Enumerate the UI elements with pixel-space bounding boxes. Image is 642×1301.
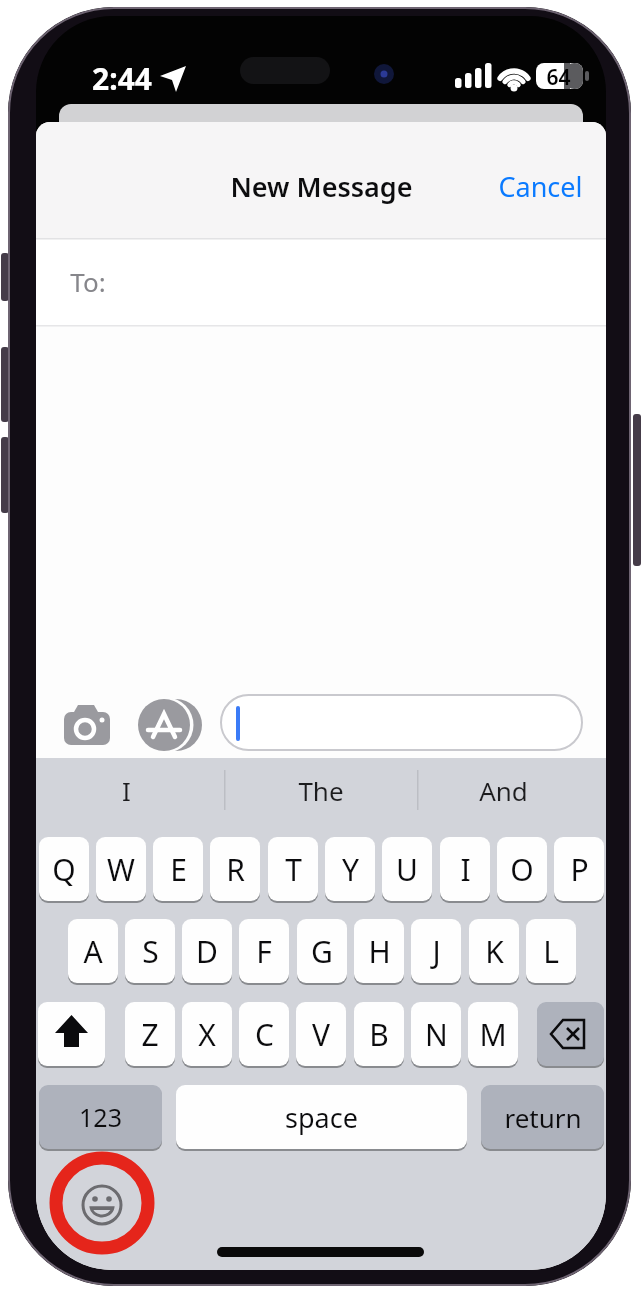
- staticText: To:: [70, 264, 106, 299]
- button[interactable]: J: [411, 919, 461, 983]
- staticText: return: [504, 1100, 582, 1135]
- button[interactable]: P: [554, 837, 604, 901]
- staticText: T: [285, 849, 302, 890]
- staticText: The: [298, 773, 344, 808]
- staticText: W: [107, 849, 135, 890]
- staticText: B: [369, 1014, 389, 1055]
- button[interactable]: G: [297, 919, 347, 983]
- staticText: Z: [141, 1014, 159, 1055]
- button[interactable]: I: [440, 837, 490, 901]
- button[interactable]: W: [96, 837, 146, 901]
- staticText: X: [198, 1014, 216, 1055]
- staticText: L: [543, 931, 559, 972]
- button[interactable]: M: [468, 1002, 518, 1066]
- button[interactable]: S: [125, 919, 175, 983]
- button[interactable]: [38, 1002, 105, 1066]
- staticText: R: [226, 849, 245, 890]
- staticText: C: [255, 1014, 274, 1055]
- staticText: M: [479, 1014, 507, 1055]
- button[interactable]: X: [182, 1002, 232, 1066]
- button[interactable]: Cancel: [473, 166, 583, 206]
- button[interactable]: Q: [39, 837, 89, 901]
- staticText: O: [510, 849, 534, 890]
- staticText: N: [425, 1014, 448, 1055]
- button[interactable]: [76, 1179, 128, 1231]
- button[interactable]: And: [453, 770, 553, 810]
- staticText: H: [368, 931, 391, 972]
- staticText: V: [312, 1014, 330, 1055]
- button[interactable]: [537, 1002, 604, 1066]
- button[interactable]: C: [239, 1002, 289, 1066]
- button[interactable]: Z: [125, 1002, 175, 1066]
- staticText: D: [196, 931, 218, 972]
- button[interactable]: [56, 702, 118, 754]
- button[interactable]: O: [497, 837, 547, 901]
- button[interactable]: I: [76, 770, 176, 810]
- button[interactable]: [221, 695, 582, 750]
- button[interactable]: H: [354, 919, 404, 983]
- button[interactable]: F: [239, 919, 289, 983]
- staticText: Y: [342, 849, 359, 890]
- staticText: F: [256, 931, 272, 972]
- button[interactable]: Y: [325, 837, 375, 901]
- button[interactable]: [36, 238, 606, 326]
- staticText: Cancel: [498, 168, 583, 205]
- staticText: G: [311, 931, 333, 972]
- staticText: 123: [79, 1100, 122, 1134]
- staticText: J: [432, 931, 441, 972]
- button[interactable]: The: [271, 770, 371, 810]
- staticText: 2:44: [92, 58, 152, 94]
- button[interactable]: return: [481, 1085, 604, 1149]
- staticText: space: [285, 1099, 358, 1136]
- staticText: A: [83, 931, 103, 972]
- button[interactable]: T: [268, 837, 318, 901]
- button[interactable]: R: [210, 837, 260, 901]
- staticText: P: [570, 849, 589, 890]
- staticText: I: [460, 849, 471, 890]
- button[interactable]: U: [382, 837, 432, 901]
- staticText: 64: [546, 63, 571, 89]
- button[interactable]: V: [296, 1002, 346, 1066]
- button[interactable]: [136, 699, 198, 751]
- button[interactable]: 123: [39, 1085, 162, 1149]
- staticText: K: [485, 931, 504, 972]
- staticText: E: [170, 849, 187, 890]
- staticText: Q: [52, 849, 76, 890]
- staticText: S: [142, 931, 159, 972]
- button[interactable]: N: [411, 1002, 461, 1066]
- staticText: And: [479, 773, 528, 808]
- staticText: U: [396, 849, 418, 890]
- button[interactable]: L: [526, 919, 576, 983]
- button[interactable]: space: [176, 1085, 467, 1149]
- button[interactable]: K: [469, 919, 519, 983]
- staticText: New Message: [230, 168, 413, 205]
- button[interactable]: E: [153, 837, 203, 901]
- staticText: I: [122, 773, 131, 808]
- button[interactable]: A: [68, 919, 118, 983]
- button[interactable]: D: [182, 919, 232, 983]
- button[interactable]: B: [354, 1002, 404, 1066]
